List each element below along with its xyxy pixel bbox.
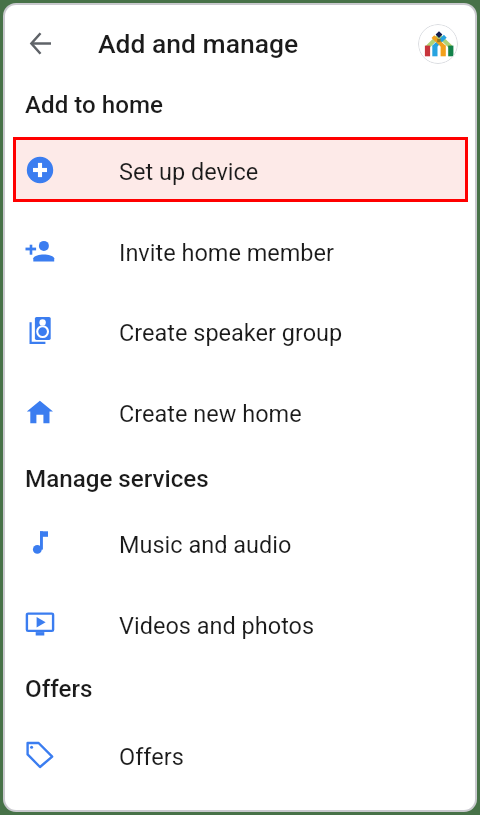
staticText: Invite home member — [119, 239, 334, 267]
button[interactable]: Music and audio — [5, 503, 475, 583]
button[interactable]: Invite home member — [5, 211, 475, 291]
staticText: Add to home — [25, 91, 164, 119]
button[interactable]: Videos and photos — [5, 584, 475, 664]
staticText: Videos and photos — [119, 612, 315, 640]
button[interactable]: Back — [16, 19, 64, 67]
button[interactable]: Create new home — [5, 372, 475, 452]
button[interactable]: Create speaker group — [5, 291, 475, 371]
staticText: Add and manage — [98, 28, 299, 59]
button[interactable]: Offers — [5, 715, 475, 795]
staticText: Offers — [119, 743, 184, 771]
staticText: Set up device — [119, 158, 259, 186]
staticText: Manage services — [25, 465, 209, 493]
staticText: Music and audio — [119, 531, 292, 559]
staticText: Create new home — [119, 400, 302, 428]
staticText: Create speaker group — [119, 319, 343, 347]
button[interactable]: Set up device — [13, 137, 468, 202]
button[interactable]: Account — [418, 24, 458, 64]
staticText: Offers — [25, 675, 93, 703]
